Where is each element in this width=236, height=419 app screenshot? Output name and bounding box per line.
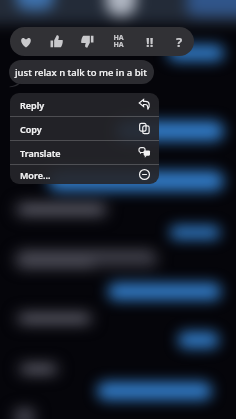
button[interactable]: Copy — [10, 117, 159, 140]
button[interactable]: Haha — [103, 27, 134, 56]
button[interactable]: Translate — [10, 141, 159, 164]
button[interactable]: Love — [10, 27, 41, 56]
staticText: just relax n talk to me in a bit — [15, 66, 147, 79]
staticText: More… — [20, 169, 51, 181]
button[interactable]: More… — [10, 165, 159, 184]
staticText: HA HA — [113, 33, 124, 50]
staticText: Copy — [20, 123, 42, 135]
button[interactable]: Emphasize — [134, 27, 165, 56]
button[interactable]: Question — [165, 27, 194, 56]
button[interactable]: Reply — [10, 93, 159, 116]
button[interactable]: just relax n talk to me in a bit — [9, 60, 154, 84]
staticText: Reply — [20, 99, 45, 111]
staticText: ? — [176, 33, 183, 51]
button[interactable]: Dislike — [72, 27, 103, 56]
staticText: !! — [146, 33, 154, 51]
staticText: Translate — [20, 147, 61, 159]
button[interactable]: Like — [41, 27, 72, 56]
